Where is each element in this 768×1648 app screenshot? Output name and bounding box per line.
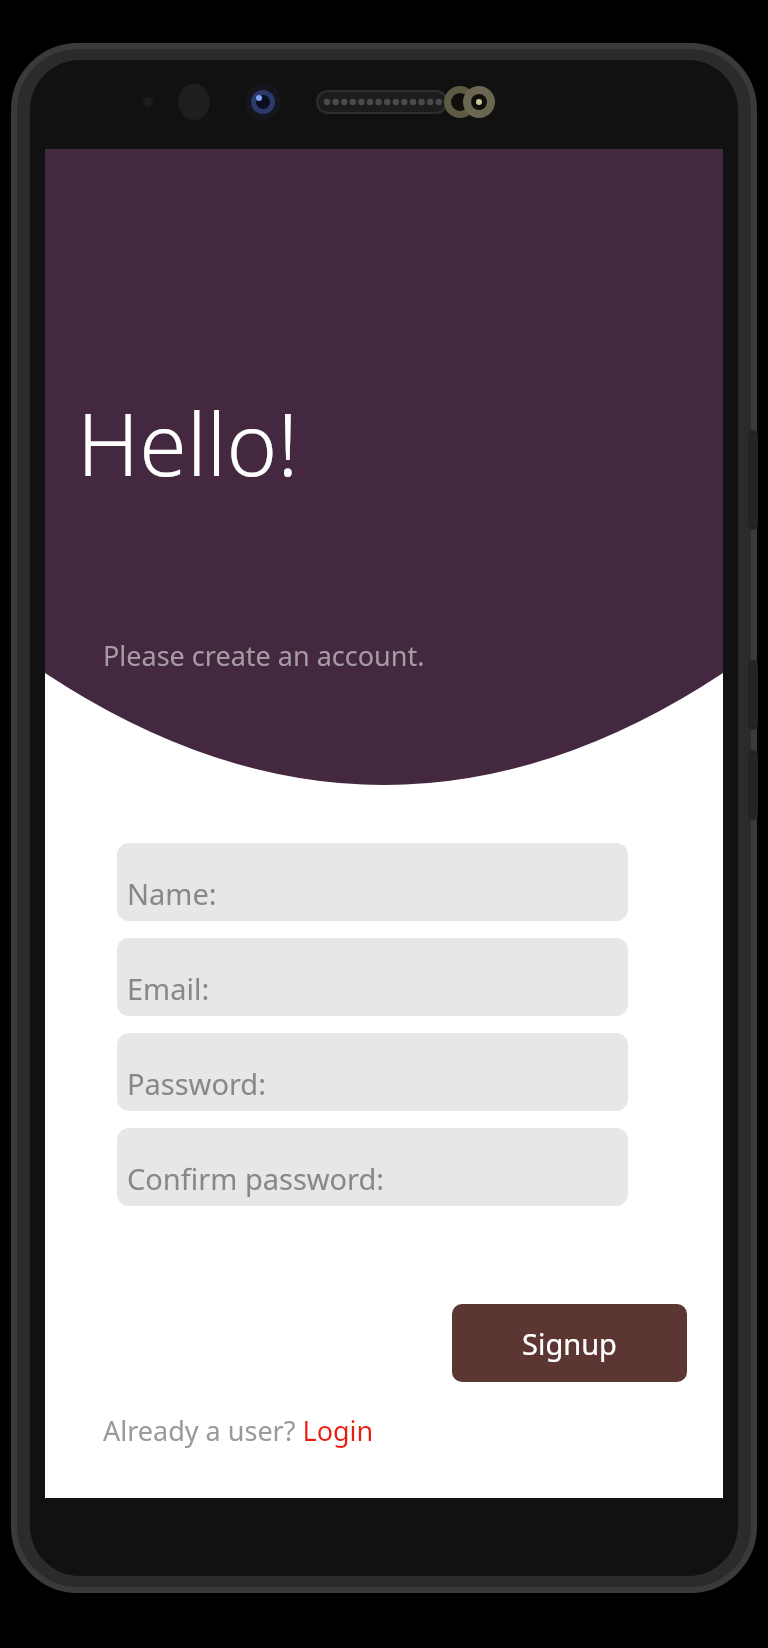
staticText: Already a user? Login: [103, 1412, 374, 1449]
staticText: Email:: [127, 969, 210, 1008]
staticText: Hello!: [77, 384, 299, 501]
staticText: Confirm password:: [127, 1159, 385, 1198]
staticText: Password:: [127, 1064, 266, 1103]
button[interactable]: Signup: [452, 1304, 687, 1382]
button[interactable]: Confirm password:: [117, 1128, 628, 1206]
button[interactable]: Password:: [117, 1033, 628, 1111]
button[interactable]: Already a user? Login: [103, 1412, 374, 1449]
button[interactable]: Email:: [117, 938, 628, 1016]
staticText: Signup: [522, 1324, 617, 1363]
staticText: Name:: [127, 874, 217, 913]
button[interactable]: Name:: [117, 843, 628, 921]
staticText: Please create an account.: [103, 637, 425, 674]
